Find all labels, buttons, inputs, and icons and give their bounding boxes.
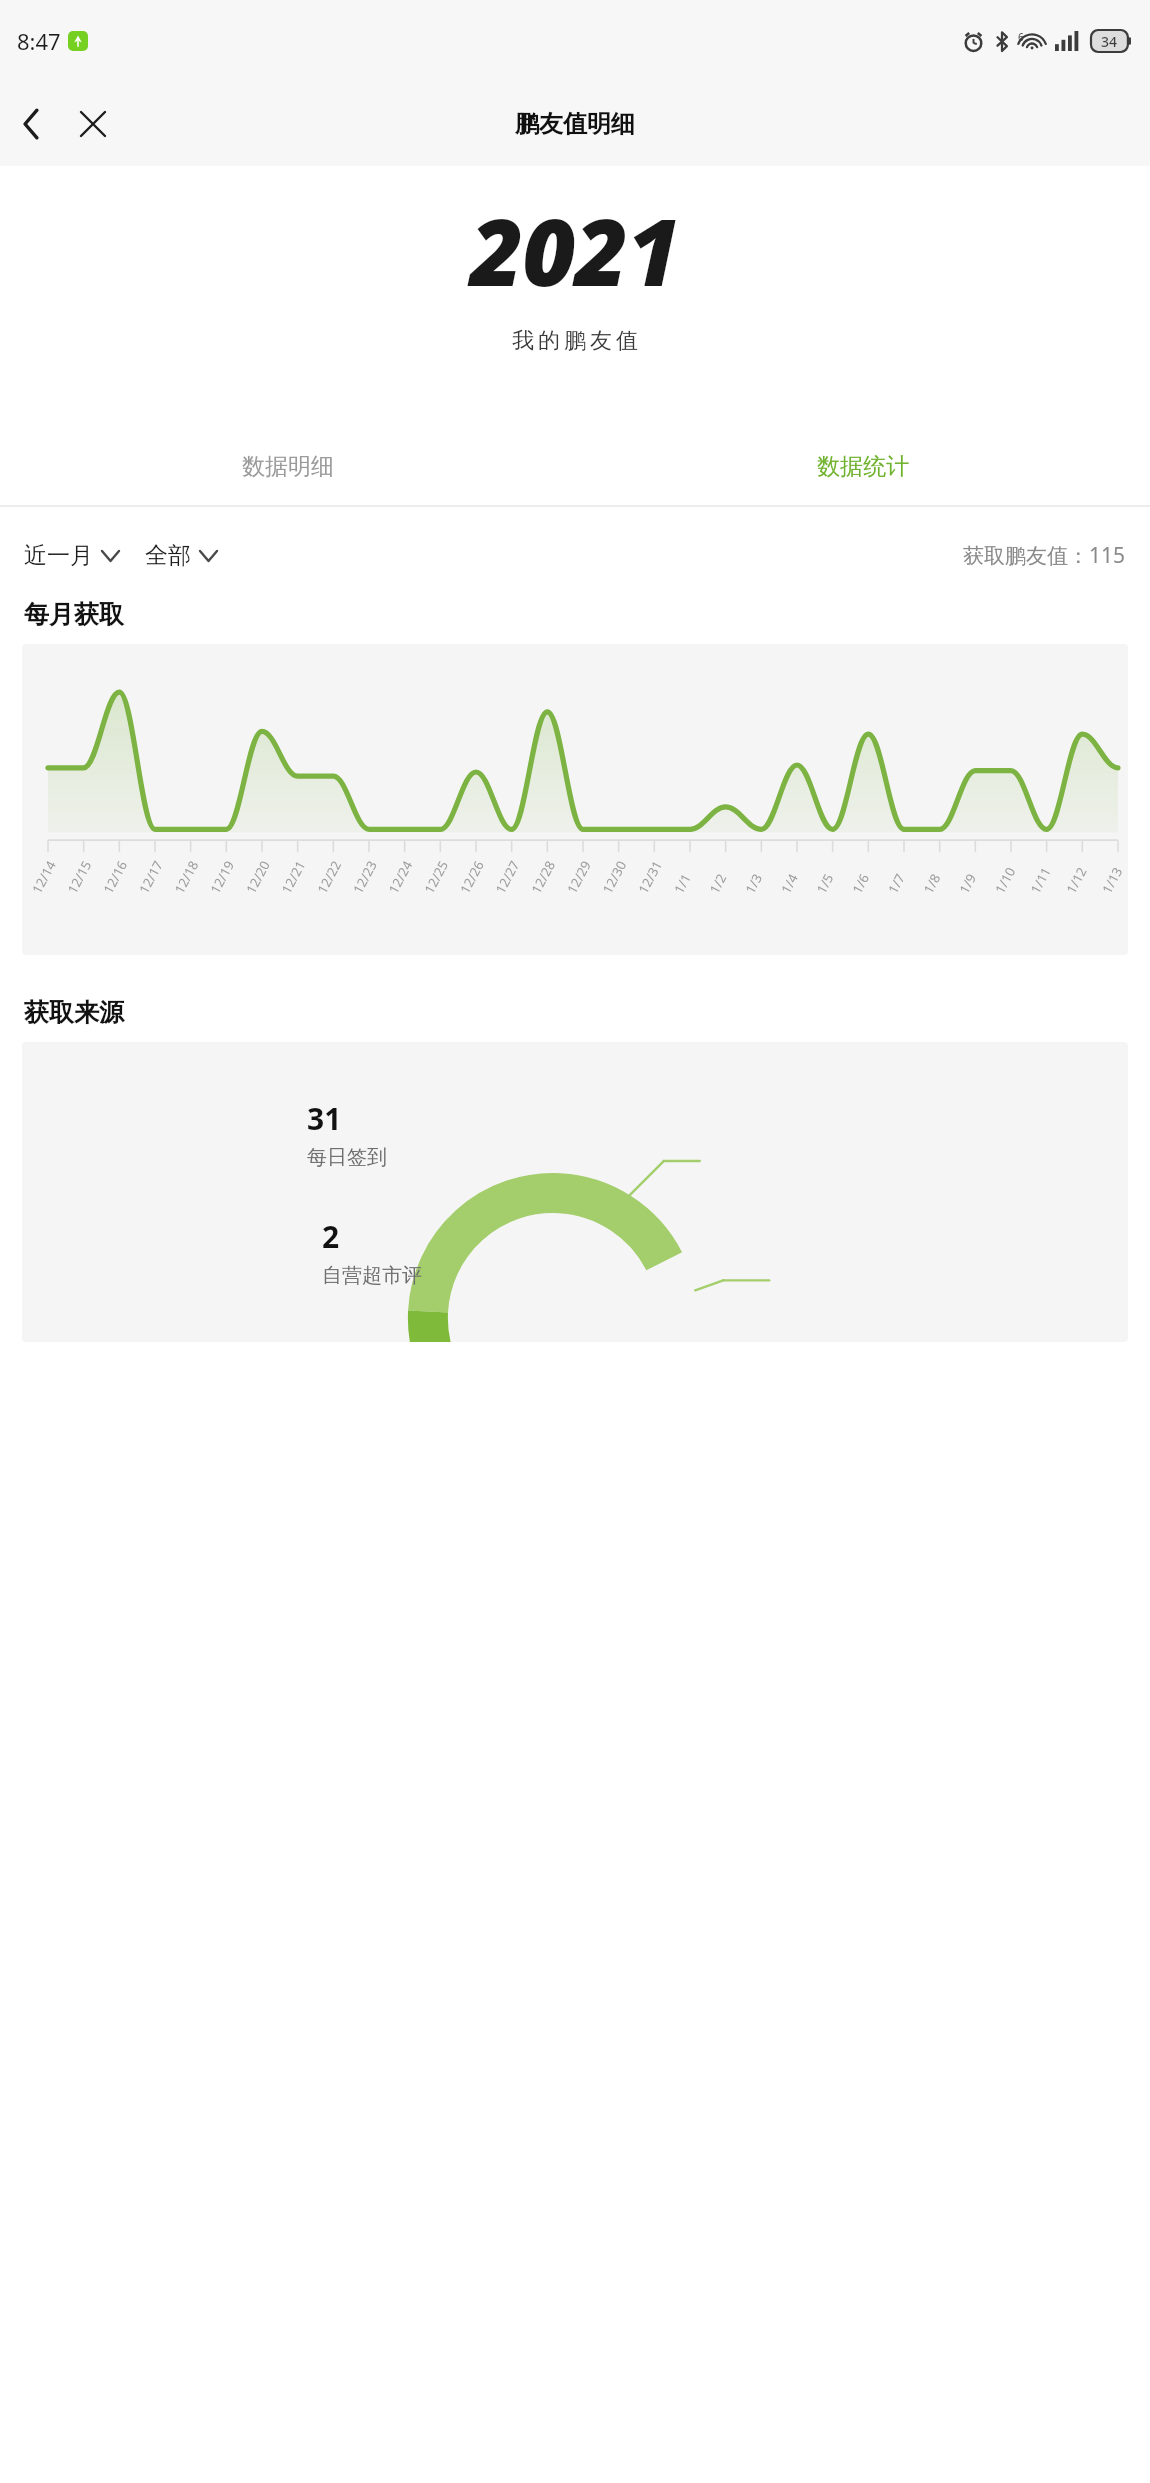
staticText: 每日签到 [307, 1145, 387, 1170]
button[interactable]: 全部 [145, 535, 217, 576]
staticText: 34 [1101, 32, 1118, 51]
staticText: 获取来源 [24, 997, 124, 1028]
staticText: 鹏友值明细 [515, 109, 635, 139]
button[interactable]: 近一月 [24, 535, 119, 576]
button[interactable]: 数据明细 [0, 427, 575, 505]
staticText: 6 [1018, 30, 1024, 44]
staticText: 数据明细 [242, 452, 334, 481]
staticText: 2021 [470, 188, 680, 313]
staticText: 31 [307, 1098, 342, 1139]
staticText: 8:47 [17, 26, 61, 56]
button[interactable]: Back [0, 93, 62, 155]
staticText: 获取鹏友值：115 [963, 541, 1126, 570]
button[interactable]: Close [62, 93, 124, 155]
staticText: 数据统计 [817, 452, 909, 481]
staticText: 每月获取 [24, 599, 124, 630]
staticText: 我的鹏友值 [510, 327, 640, 355]
staticText: 自营超市评 [322, 1263, 422, 1288]
staticText: 2 [322, 1216, 340, 1257]
staticText: 全部 [145, 541, 191, 570]
button[interactable]: 数据统计 [575, 427, 1150, 505]
staticText: 近一月 [24, 541, 93, 570]
